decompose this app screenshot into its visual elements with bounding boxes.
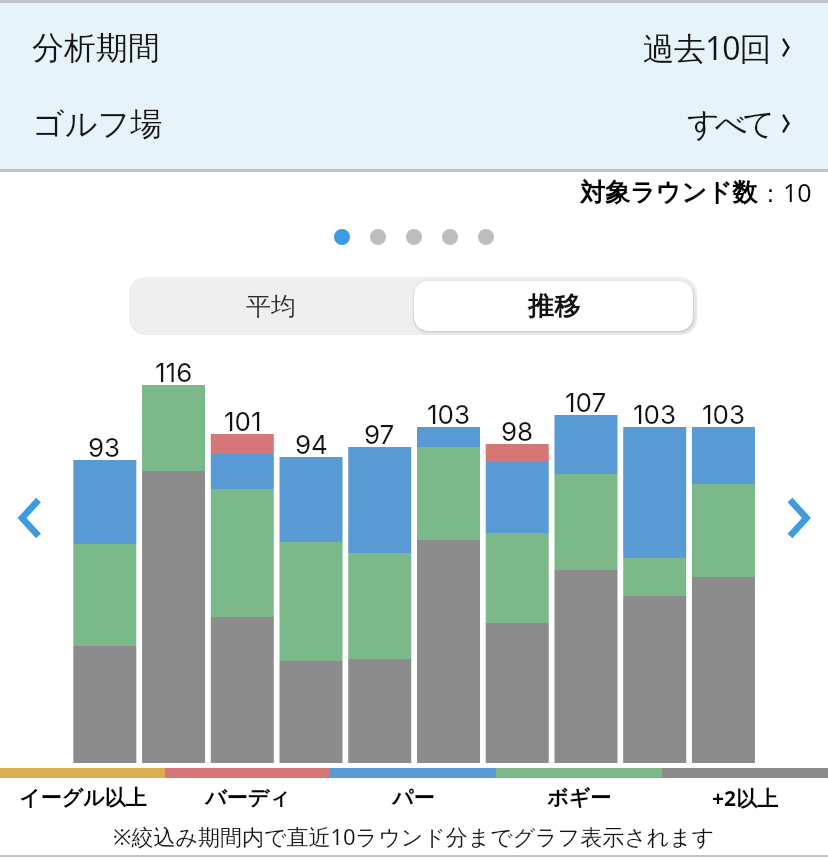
staticText: 93 bbox=[88, 432, 121, 462]
staticText: 101 bbox=[224, 406, 262, 436]
button[interactable]: 平均 bbox=[129, 277, 413, 335]
staticText: ゴルフ場 bbox=[32, 104, 163, 144]
staticText: 平均 bbox=[246, 291, 296, 322]
button[interactable]: Next bbox=[772, 484, 824, 552]
staticText: +2以上 bbox=[712, 784, 779, 813]
button[interactable]: Previous bbox=[6, 484, 58, 552]
staticText: ボギー bbox=[547, 785, 611, 811]
staticText: 推移 bbox=[528, 290, 580, 323]
staticText: 103 bbox=[702, 399, 746, 429]
staticText: すべて bbox=[687, 104, 771, 144]
button[interactable]: 推移 bbox=[414, 281, 693, 331]
staticText: 過去10回 bbox=[643, 26, 771, 70]
staticText: バーディ bbox=[205, 785, 291, 811]
button[interactable]: ゴルフ場 bbox=[0, 79, 828, 168]
button[interactable] bbox=[413, 277, 697, 335]
staticText: 103 bbox=[633, 399, 677, 429]
staticText: ：10 bbox=[758, 175, 812, 209]
button[interactable]: 分析期間 bbox=[0, 3, 828, 92]
staticText: 94 bbox=[295, 429, 328, 459]
staticText: イーグル以上 bbox=[19, 785, 147, 811]
staticText: 116 bbox=[155, 357, 193, 387]
staticText: パー bbox=[392, 785, 435, 811]
staticText: 103 bbox=[427, 399, 471, 429]
staticText: ※絞込み期間内で直近10ラウンド分までグラフ表示されます bbox=[113, 821, 715, 851]
staticText: 107 bbox=[565, 387, 607, 417]
staticText: 分析期間 bbox=[32, 28, 160, 68]
staticText: 対象ラウンド数 bbox=[580, 177, 758, 208]
staticText: 97 bbox=[364, 419, 395, 449]
staticText: 98 bbox=[501, 416, 534, 446]
